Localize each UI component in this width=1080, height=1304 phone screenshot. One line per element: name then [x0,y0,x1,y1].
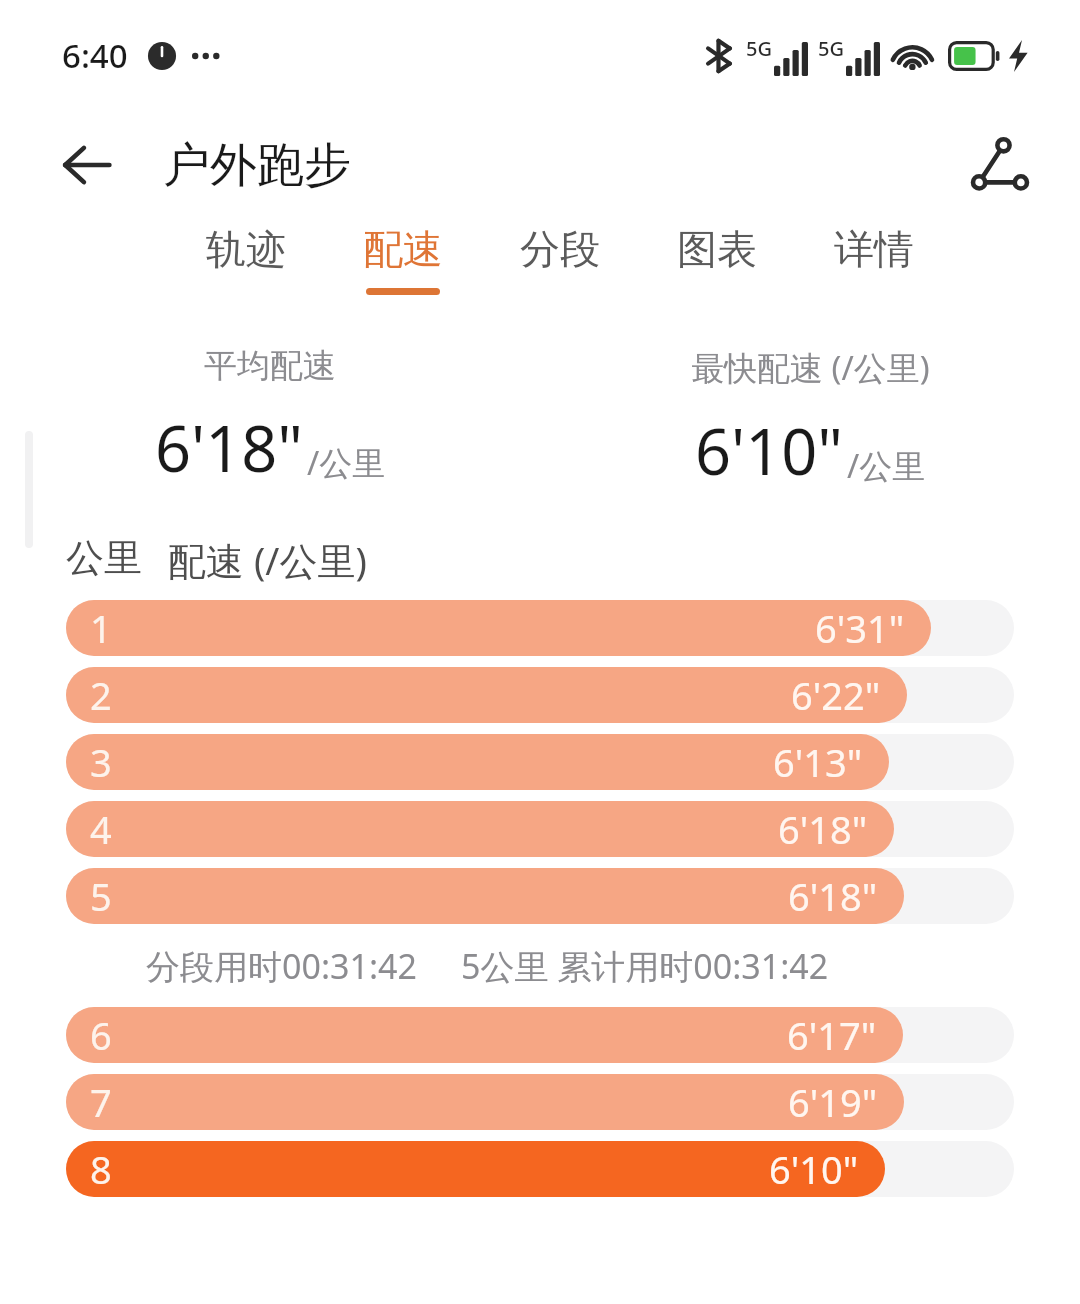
staticText: 6'31" [815,602,905,654]
staticText: /公里 [307,440,386,485]
button[interactable]: Back [48,127,124,203]
staticText: 6'22" [791,669,881,721]
staticText: 8 [90,1143,112,1195]
staticText: 平均配速 [204,345,336,387]
staticText: 配速 (/公里) [168,534,367,586]
button[interactable]: 轨迹 [200,220,292,299]
button[interactable]: 分段 [514,220,606,299]
button[interactable]: Share [962,127,1038,203]
staticText: 公里 [66,534,142,582]
staticText: 户外跑步 [163,136,351,195]
staticText: 5公里 累计用时00:31:42 [461,943,829,989]
button[interactable]: 8 [66,1141,1014,1197]
staticText: 6:40 [62,33,128,78]
staticText: 6'18" [778,803,868,855]
staticText: /公里 [847,443,926,488]
staticText: 3 [90,736,112,788]
button[interactable]: 1 [66,600,1014,656]
staticText: 分段用时00:31:42 [146,943,417,989]
staticText: 6'13" [773,736,863,788]
staticText: 4 [90,803,112,855]
staticText: 最快配速 (/公里) [691,345,930,390]
button[interactable]: 5 [66,868,1014,924]
button[interactable]: 2 [66,667,1014,723]
staticText: 5 [90,870,112,922]
staticText: 6 [90,1009,112,1061]
staticText: 1 [90,602,112,654]
button[interactable]: 6 [66,1007,1014,1063]
staticText: 配速 [363,224,443,274]
staticText: 6'10" [695,408,843,494]
staticText: 2 [90,669,112,721]
button[interactable]: 7 [66,1074,1014,1130]
button[interactable]: 3 [66,734,1014,790]
staticText: 6'18" [155,405,303,491]
staticText: 6'18" [788,870,878,922]
staticText: 图表 [677,224,757,274]
staticText: 轨迹 [206,224,286,274]
button[interactable]: 4 [66,801,1014,857]
button[interactable]: 图表 [671,220,763,299]
staticText: 6'10" [769,1143,859,1195]
staticText: 详情 [834,224,914,274]
staticText: 5G [746,35,772,62]
staticText: 6'19" [788,1076,878,1128]
button[interactable]: 配速 [357,220,449,299]
staticText: 7 [90,1076,112,1128]
staticText: 6'17" [787,1009,877,1061]
button[interactable]: 详情 [828,220,920,299]
staticText: 分段 [520,224,600,274]
staticText: 5G [818,35,844,62]
